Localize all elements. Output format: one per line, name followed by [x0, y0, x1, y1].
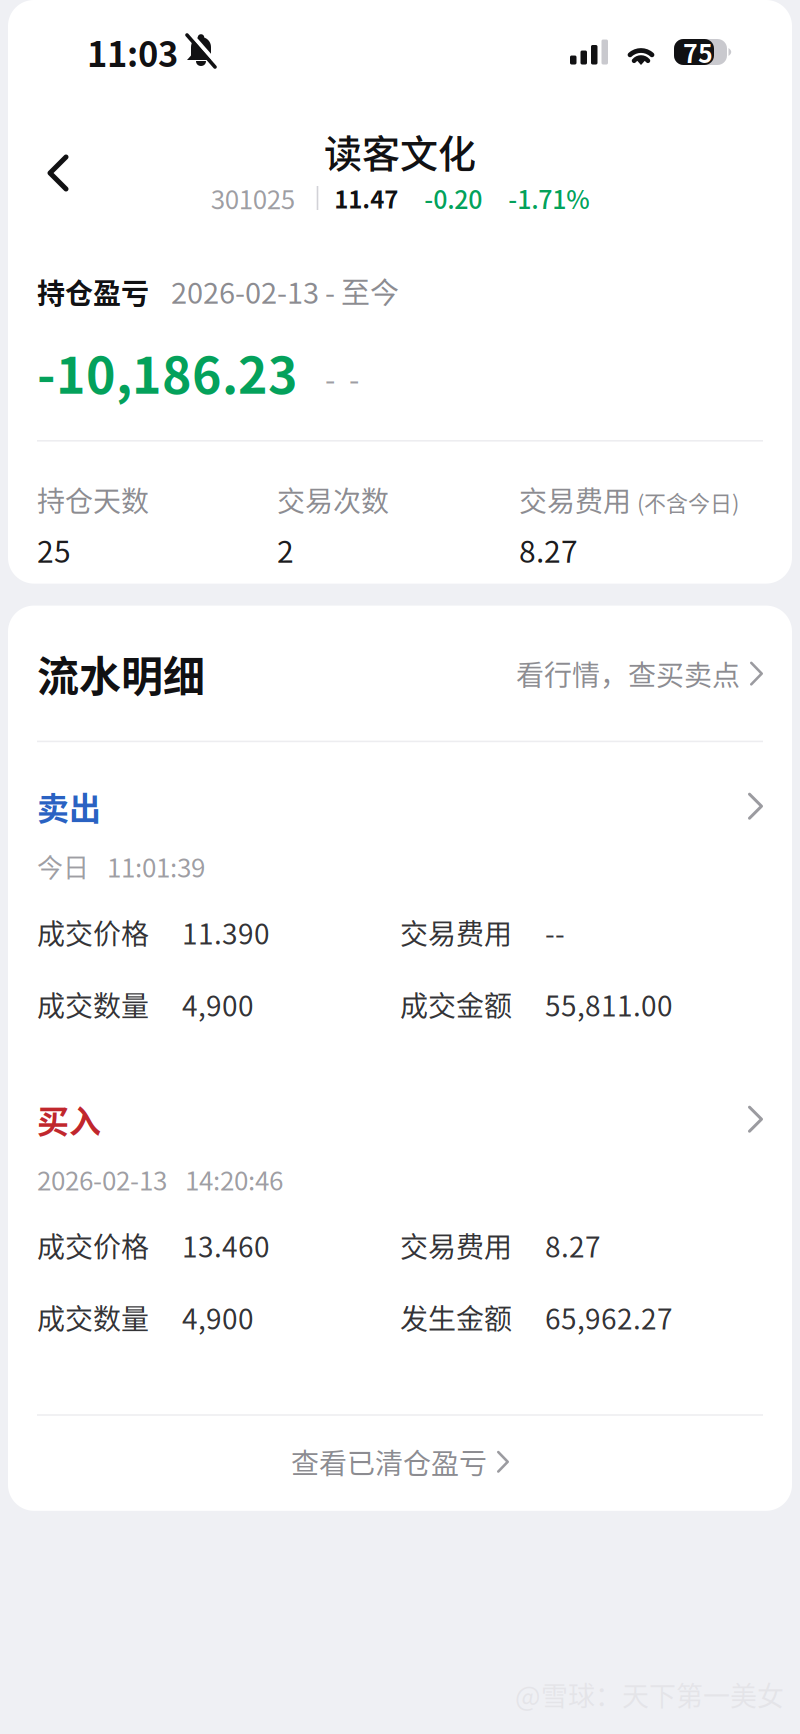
- staticText: 交易费用: [400, 912, 512, 952]
- staticText: 今日: [37, 847, 89, 885]
- staticText: (不含今日): [637, 486, 739, 518]
- staticText: 交易费用: [519, 479, 631, 520]
- staticText: 看行情，查买卖点: [516, 653, 740, 694]
- staticText: 2026-02-13 - 至今: [171, 270, 399, 312]
- staticText: 14:20:46: [185, 1160, 283, 1198]
- staticText: - -: [325, 356, 359, 399]
- staticText: 交易次数: [277, 479, 389, 520]
- staticText: 2: [277, 528, 294, 571]
- staticText: 301025: [211, 179, 295, 217]
- staticText: --: [545, 912, 565, 952]
- staticText: 流水明细: [37, 643, 205, 704]
- staticText: 成交价格: [37, 1225, 149, 1265]
- staticText: 卖出: [37, 783, 101, 829]
- staticText: -0.20: [424, 180, 482, 216]
- staticText: 买入: [37, 1096, 101, 1142]
- staticText: 成交价格: [37, 912, 149, 952]
- staticText: 8.27: [519, 528, 578, 571]
- button[interactable]: 查看已清仓盈亏: [37, 1416, 763, 1511]
- staticText: 65,962.27: [545, 1297, 673, 1337]
- staticText: 11:01:39: [107, 847, 205, 885]
- staticText: 11:03: [87, 27, 178, 77]
- staticText: @雪球：天下第一美女: [515, 1675, 784, 1714]
- staticText: 4,900: [182, 1297, 254, 1337]
- staticText: 读客文化: [324, 123, 476, 178]
- staticText: 75: [683, 34, 713, 70]
- staticText: 成交数量: [37, 984, 149, 1024]
- staticText: 交易费用: [400, 1225, 512, 1265]
- button[interactable]: 流水明细: [37, 606, 763, 741]
- button[interactable]: 卖出: [37, 742, 763, 835]
- staticText: 持仓天数: [37, 479, 149, 520]
- staticText: 4,900: [182, 984, 254, 1024]
- staticText: 2026-02-13: [37, 1160, 167, 1198]
- staticText: 25: [37, 528, 71, 571]
- staticText: 11.390: [182, 912, 270, 952]
- button[interactable]: 买入: [37, 1055, 763, 1148]
- staticText: 13.460: [182, 1225, 270, 1265]
- staticText: 发生金额: [400, 1297, 512, 1337]
- staticText: 8.27: [545, 1225, 601, 1265]
- staticText: 成交数量: [37, 1297, 149, 1337]
- staticText: -1.71%: [508, 180, 589, 216]
- staticText: 查看已清仓盈亏: [291, 1441, 487, 1482]
- staticText: 成交金额: [400, 984, 512, 1024]
- staticText: -10,186.23: [37, 336, 298, 408]
- staticText: 11.47: [334, 181, 398, 215]
- staticText: 持仓盈亏: [37, 271, 149, 312]
- staticText: 55,811.00: [545, 984, 673, 1024]
- button[interactable]: Back: [20, 135, 96, 211]
